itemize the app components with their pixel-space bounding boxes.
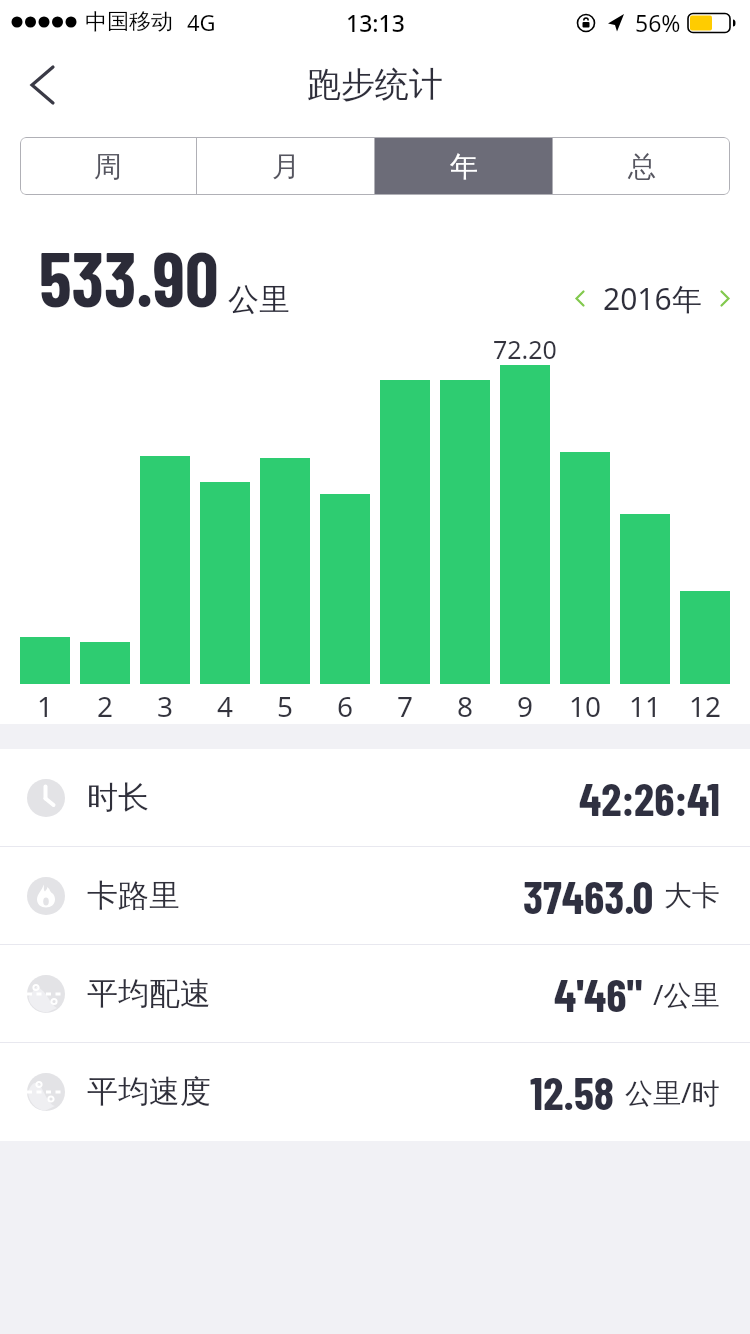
staticText: 11 [629, 687, 662, 725]
staticText: 平均速度 [87, 1072, 211, 1111]
button[interactable]: 平均配速 [0, 945, 750, 1042]
staticText: 4 [217, 687, 234, 725]
button[interactable]: 月 [197, 137, 374, 195]
staticText: 大卡 [664, 878, 720, 913]
staticText: 月 [272, 149, 300, 184]
button[interactable]: 周 [20, 137, 196, 195]
staticText: 10 [569, 687, 602, 725]
staticText: 平均配速 [87, 974, 211, 1013]
staticText: 2016年 [603, 278, 702, 319]
button[interactable]: 卡路里 [0, 847, 750, 944]
staticText: 公里/时 [625, 1073, 720, 1111]
button[interactable]: 时长 [0, 749, 750, 846]
staticText: 7 [397, 687, 414, 725]
staticText: 12 [689, 687, 722, 725]
staticText: 9 [517, 687, 534, 725]
button[interactable] [14, 57, 70, 113]
staticText: 37463.0 [523, 868, 654, 923]
staticText: 1 [37, 687, 54, 725]
staticText: 8 [457, 687, 474, 725]
staticText: 周 [94, 149, 122, 184]
staticText: 56% [635, 7, 681, 38]
staticText: 42:26:41 [579, 770, 720, 825]
staticText: 72.20 [493, 332, 557, 366]
staticText: 4'46" [554, 966, 643, 1021]
staticText: 卡路里 [87, 876, 180, 915]
staticText: 5 [277, 687, 294, 725]
button[interactable]: 平均速度 [0, 1043, 750, 1140]
staticText: 跑步统计 [307, 63, 443, 106]
button[interactable]: 年 [375, 137, 552, 195]
button[interactable]: 总 [553, 137, 730, 195]
staticText: 6 [337, 687, 354, 725]
staticText: 3 [157, 687, 174, 725]
button[interactable] [565, 276, 595, 320]
staticText: 4G [187, 7, 216, 37]
button[interactable] [710, 276, 740, 320]
staticText: 2 [97, 687, 114, 725]
staticText: 中国移动 [85, 8, 173, 36]
staticText: 时长 [87, 778, 149, 817]
staticText: 12.58 [530, 1064, 615, 1119]
staticText: 13:13 [346, 7, 405, 38]
staticText: 公里 [228, 280, 290, 319]
staticText: 总 [628, 149, 656, 184]
staticText: /公里 [653, 975, 720, 1013]
staticText: 年 [450, 149, 478, 184]
staticText: 533.90 [39, 230, 219, 322]
